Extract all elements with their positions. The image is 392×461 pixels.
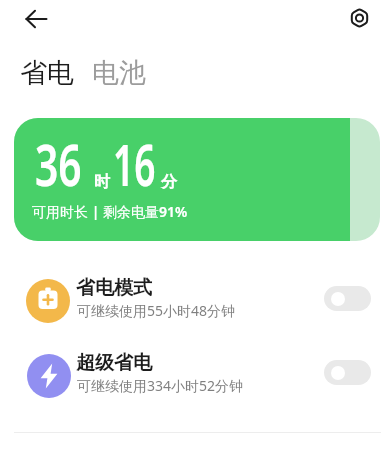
staticText: 16	[113, 125, 156, 203]
staticText: 可用时长 | 剩余电量91%	[32, 202, 188, 221]
staticText: 36	[35, 125, 82, 203]
button[interactable]	[340, 2, 378, 34]
button[interactable]: 省电	[20, 56, 74, 90]
button[interactable]: 电池	[92, 56, 146, 90]
button[interactable]	[324, 360, 371, 385]
button[interactable]: 超级省电	[14, 341, 378, 411]
staticText: 省电模式	[76, 276, 152, 300]
button[interactable]	[324, 286, 371, 311]
staticText: 分	[161, 172, 177, 192]
staticText: 可继续使用334小时52分钟	[77, 376, 244, 395]
staticText: 时	[94, 172, 110, 192]
staticText: 超级省电	[76, 351, 152, 375]
button[interactable]: 36	[14, 118, 380, 241]
button[interactable]: 省电模式	[14, 266, 378, 336]
staticText: 可继续使用55小时48分钟	[77, 301, 236, 320]
button[interactable]	[14, 4, 58, 34]
